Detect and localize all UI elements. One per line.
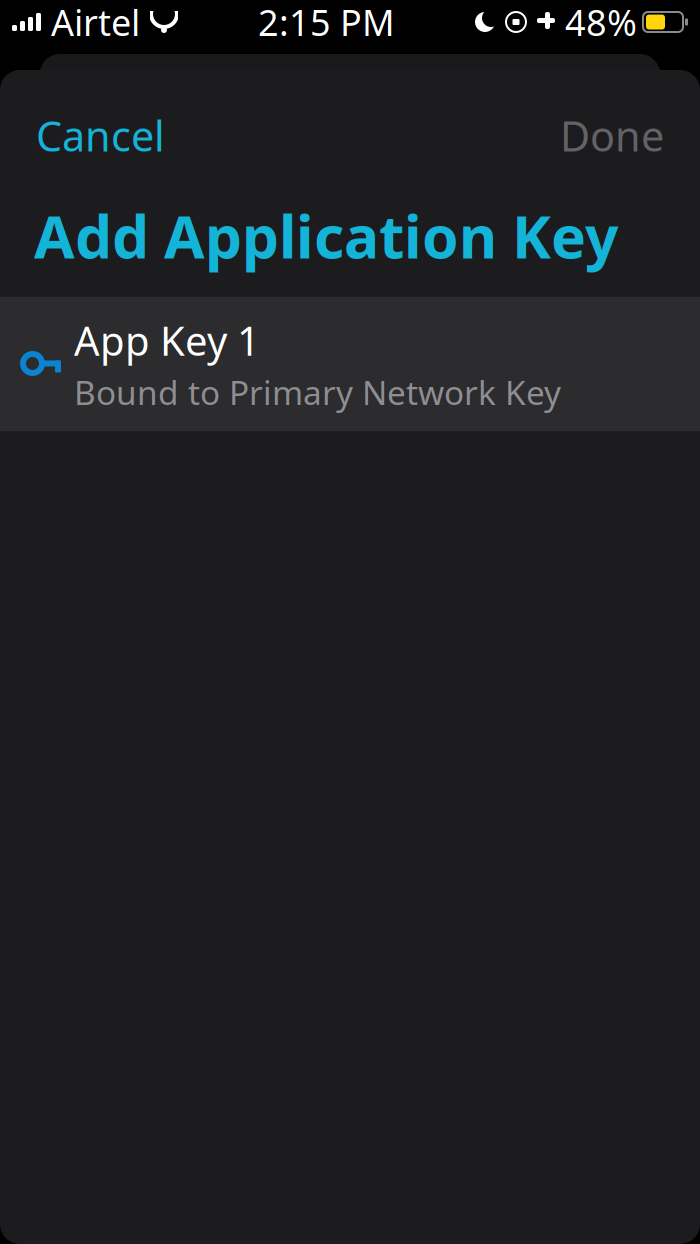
staticText: 2:15 PM <box>258 0 395 46</box>
button[interactable]: Cancel <box>32 98 169 173</box>
staticText: Bound to Primary Network Key <box>74 370 561 414</box>
staticText: Airtel <box>51 0 140 46</box>
staticText: Cancel <box>36 108 165 163</box>
button[interactable]: App Key 1 <box>0 297 700 431</box>
staticText: App Key 1 <box>74 314 260 367</box>
staticText: 48% <box>565 0 637 46</box>
staticText: Done <box>560 108 664 163</box>
button[interactable]: Done <box>556 98 668 173</box>
staticText: Add Application Key <box>34 197 618 275</box>
